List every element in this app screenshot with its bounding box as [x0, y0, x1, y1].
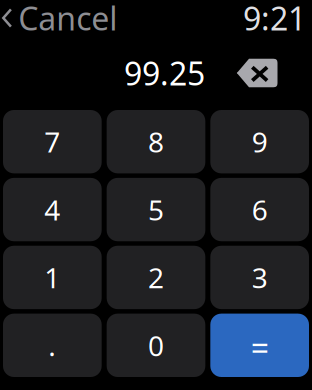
button[interactable]: Delete [233, 53, 281, 93]
staticText: 1 [44, 259, 60, 296]
staticText: 9:21 [243, 0, 306, 39]
staticText: 2 [148, 259, 164, 296]
button[interactable]: 1 [3, 246, 102, 309]
staticText: 6 [252, 191, 268, 228]
staticText: 0 [148, 327, 164, 364]
button[interactable]: 5 [107, 178, 205, 241]
button[interactable]: Cancel [0, 0, 117, 36]
staticText: = [251, 326, 269, 369]
staticText: . [48, 327, 56, 364]
button[interactable]: 0 [107, 314, 205, 377]
staticText: Cancel [18, 0, 117, 39]
button[interactable]: 3 [210, 246, 309, 309]
staticText: 4 [44, 191, 60, 228]
button[interactable]: 2 [107, 246, 205, 309]
button[interactable]: 4 [3, 178, 102, 241]
button[interactable]: 8 [107, 110, 205, 173]
button[interactable]: = [210, 314, 309, 377]
staticText: 99.25 [124, 52, 205, 94]
staticText: 3 [252, 259, 268, 296]
staticText: 7 [44, 123, 60, 160]
staticText: 8 [148, 123, 164, 160]
staticText: 5 [148, 191, 164, 228]
button[interactable]: . [3, 314, 102, 377]
button[interactable]: 6 [210, 178, 309, 241]
button[interactable]: 9 [210, 110, 309, 173]
staticText: 9 [252, 123, 268, 160]
button[interactable]: 7 [3, 110, 102, 173]
